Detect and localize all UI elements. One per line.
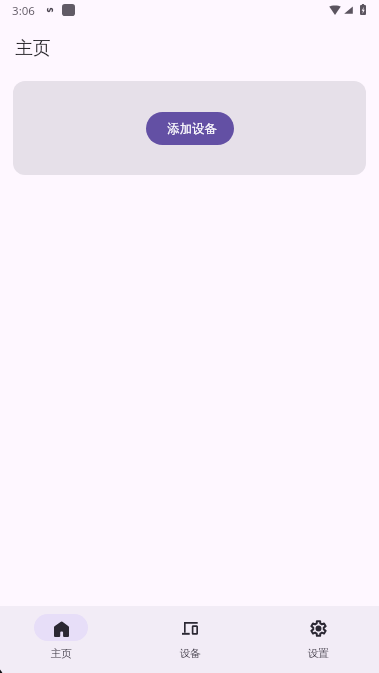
button[interactable]: 设备	[145, 606, 235, 673]
staticText: 3:06	[12, 3, 35, 19]
staticText: 主页	[15, 37, 51, 59]
button[interactable]: 主页	[16, 606, 106, 673]
staticText: 添加设备	[167, 121, 217, 136]
staticText: 设置	[307, 647, 329, 660]
other: 设备	[182, 621, 198, 635]
button[interactable]: 设置	[273, 606, 363, 673]
button[interactable]: 添加设备	[146, 112, 234, 145]
other: 设置	[310, 620, 327, 637]
staticText: 主页	[50, 647, 72, 660]
other: 主页	[54, 621, 69, 637]
staticText: 设备	[179, 647, 201, 660]
